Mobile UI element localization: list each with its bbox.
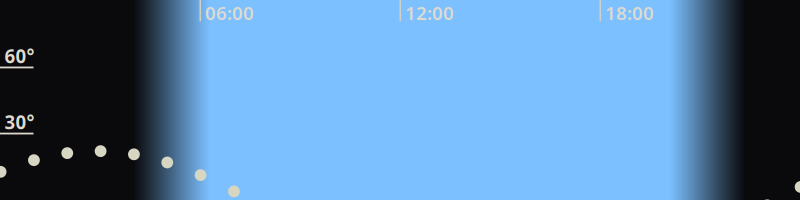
button[interactable]: Moon altitude chart [0,0,800,200]
staticText: 06:00 [205,0,254,25]
staticText: 60° [4,44,34,68]
staticText: 30° [4,110,34,134]
staticText: 18:00 [605,0,654,25]
staticText: 12:00 [405,0,454,25]
